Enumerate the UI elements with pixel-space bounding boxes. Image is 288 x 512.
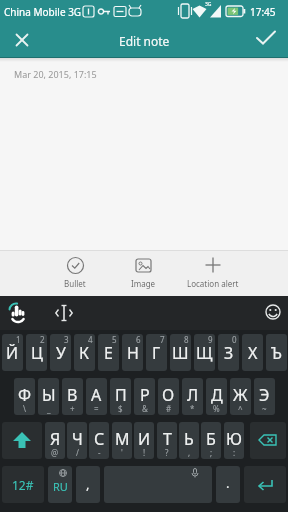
staticText: 4 xyxy=(88,334,93,345)
button[interactable]: Ъ xyxy=(266,334,287,371)
staticText: П xyxy=(115,384,127,406)
button[interactable]: У xyxy=(50,334,71,371)
button[interactable]: . xyxy=(216,466,240,503)
button[interactable]: Р xyxy=(134,378,155,415)
staticText: Й xyxy=(6,342,19,364)
staticText: Ж xyxy=(233,384,248,406)
staticText: Р xyxy=(140,384,150,406)
button[interactable]: Й xyxy=(2,334,23,371)
staticText: Я xyxy=(50,428,61,450)
button[interactable]: Я xyxy=(45,422,65,459)
button[interactable]: К xyxy=(74,334,95,371)
staticText: Д xyxy=(211,384,223,406)
button[interactable]: В xyxy=(62,378,83,415)
button[interactable]: Ф xyxy=(14,378,35,415)
staticText: 1 xyxy=(16,334,21,345)
staticText: К xyxy=(79,342,90,364)
button[interactable]: Д xyxy=(206,378,227,415)
staticText: 3 xyxy=(64,334,69,345)
staticText: 3G xyxy=(205,1,212,8)
staticText: 8 xyxy=(184,334,189,345)
button[interactable] xyxy=(4,299,32,327)
button[interactable]: Ю xyxy=(224,422,244,459)
staticText: ~ xyxy=(262,403,267,414)
button[interactable]: Т xyxy=(157,422,177,459)
staticText: , xyxy=(86,475,90,493)
button[interactable]: М xyxy=(112,422,132,459)
staticText: У xyxy=(56,342,66,364)
staticText: ' xyxy=(121,447,123,458)
button[interactable]: С xyxy=(89,422,109,459)
button[interactable]: Ш xyxy=(170,334,191,371)
staticText: ^ xyxy=(238,403,243,414)
staticText: Э xyxy=(259,384,270,406)
button[interactable] xyxy=(252,26,280,54)
staticText: Ш xyxy=(172,342,189,364)
staticText: + xyxy=(70,403,75,414)
staticText: В xyxy=(67,384,78,406)
button[interactable]: И xyxy=(134,422,154,459)
staticText: Н xyxy=(127,342,139,364)
staticText: Е xyxy=(104,342,113,364)
button[interactable] xyxy=(2,422,42,459)
button[interactable] xyxy=(104,466,212,503)
staticText: 0 xyxy=(232,334,237,345)
button[interactable]: Е xyxy=(98,334,119,371)
button[interactable]: Л xyxy=(182,378,203,415)
button[interactable]: П xyxy=(110,378,131,415)
staticText: З xyxy=(224,342,234,364)
staticText: Т xyxy=(163,428,172,450)
staticText: ! xyxy=(143,447,146,458)
staticText: 17:45 xyxy=(250,5,276,19)
button[interactable]: З xyxy=(218,334,239,371)
staticText: С xyxy=(94,428,105,450)
staticText: _ xyxy=(47,403,51,414)
staticText: О xyxy=(162,384,175,406)
staticText: 12# xyxy=(12,477,34,493)
staticText: * xyxy=(190,403,195,414)
button[interactable]: А xyxy=(86,378,107,415)
staticText: Mar 20, 2015, 17:15 xyxy=(14,68,97,80)
staticText: Ъ xyxy=(271,342,282,364)
staticText: / xyxy=(76,447,79,458)
staticText: % xyxy=(213,403,220,414)
staticText: 5 xyxy=(112,334,117,345)
button[interactable]: Г xyxy=(146,334,167,371)
staticText: Х xyxy=(248,342,258,364)
staticText: - xyxy=(98,447,101,458)
staticText: ? xyxy=(165,447,169,458)
button[interactable]: Э xyxy=(254,378,275,415)
staticText: ; xyxy=(210,447,213,458)
button[interactable]: Ч xyxy=(67,422,87,459)
staticText: Ы xyxy=(42,384,56,406)
staticText: = xyxy=(94,403,99,414)
button[interactable]: Х xyxy=(242,334,263,371)
staticText: # xyxy=(166,403,172,414)
button[interactable]: О xyxy=(158,378,179,415)
button[interactable]: Ж xyxy=(230,378,251,415)
button[interactable]: Н xyxy=(122,334,143,371)
button[interactable] xyxy=(50,299,78,327)
button[interactable]: Location alert xyxy=(183,255,243,297)
button[interactable]: Image xyxy=(113,255,173,297)
staticText: : xyxy=(233,447,236,458)
button[interactable]: Щ xyxy=(194,334,215,371)
button[interactable] xyxy=(8,26,36,54)
button[interactable]: RU xyxy=(48,466,72,503)
staticText: RU xyxy=(53,479,68,494)
button[interactable]: Ц xyxy=(26,334,47,371)
staticText: Б xyxy=(206,428,216,450)
button[interactable]: Ь xyxy=(179,422,199,459)
button[interactable] xyxy=(250,422,286,459)
button[interactable]: Б xyxy=(201,422,221,459)
staticText: & xyxy=(142,403,148,414)
button[interactable]: Ы xyxy=(38,378,59,415)
button[interactable]: Bullet xyxy=(45,255,105,297)
staticText: 9 xyxy=(208,334,213,345)
button[interactable]: , xyxy=(76,466,100,503)
button[interactable] xyxy=(244,466,286,503)
staticText: Л xyxy=(187,384,199,406)
staticText: Ф xyxy=(18,384,32,406)
button[interactable]: 12# xyxy=(2,466,44,503)
button[interactable] xyxy=(259,298,287,326)
